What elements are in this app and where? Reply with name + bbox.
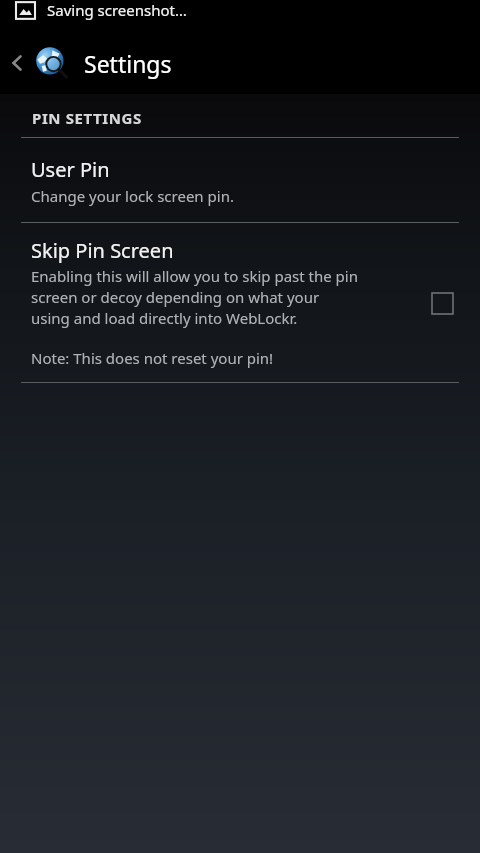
button[interactable]: Skip Pin Screen checkbox bbox=[425, 286, 459, 320]
button[interactable]: User Pin bbox=[0, 138, 480, 222]
staticText: Change your lock screen pin. bbox=[31, 186, 234, 206]
staticText: Settings bbox=[84, 48, 172, 79]
staticText: Skip Pin Screen bbox=[31, 237, 174, 264]
staticText: Saving screenshot… bbox=[47, 0, 187, 20]
staticText: User Pin bbox=[31, 156, 110, 183]
staticText: Enabling this will allow you to skip pas… bbox=[31, 266, 361, 329]
button[interactable]: Navigate up, Settings bbox=[0, 32, 480, 94]
button[interactable]: Skip Pin Screen bbox=[0, 223, 480, 382]
staticText: Note: This does not reset your pin! bbox=[31, 348, 274, 368]
staticText: PIN SETTINGS bbox=[32, 108, 142, 128]
